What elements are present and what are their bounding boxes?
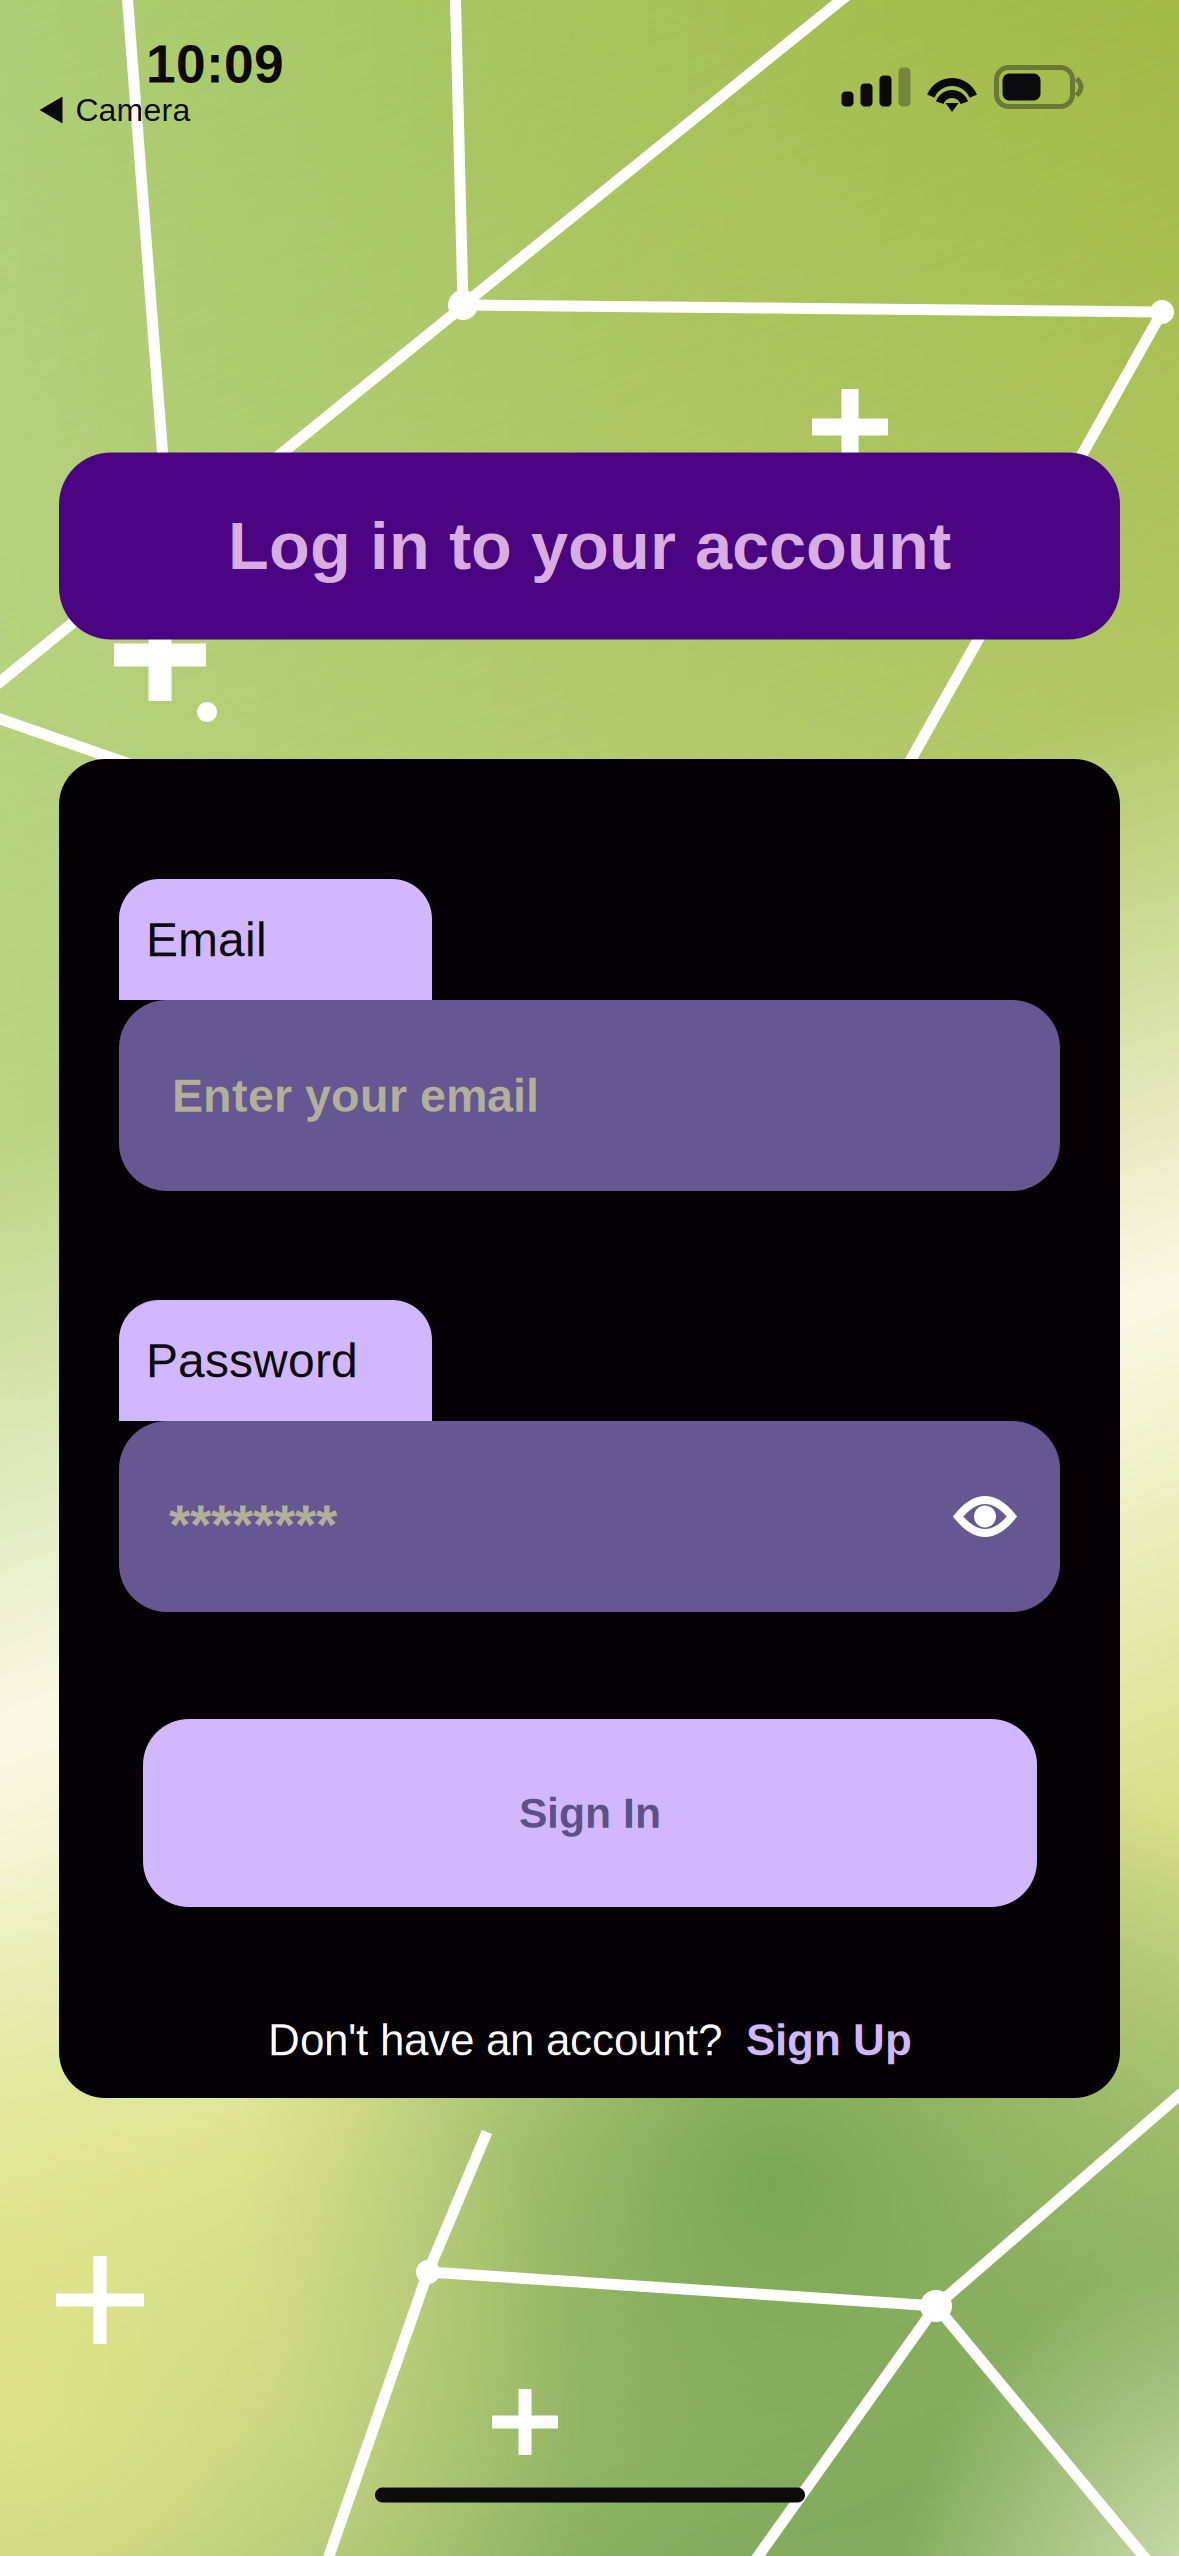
staticText: Log in to your account xyxy=(228,509,951,583)
staticText: Password xyxy=(146,1334,358,1387)
staticText: Don't have an account? xyxy=(268,2015,722,2065)
staticText: Sign In xyxy=(519,1789,661,1837)
staticText: 10:09 xyxy=(146,34,284,94)
staticText: Email xyxy=(146,913,267,966)
button[interactable]: Camera xyxy=(25,82,204,138)
button[interactable]: Sign Up xyxy=(722,2015,912,2065)
staticText: Camera xyxy=(75,92,190,128)
button[interactable]: Show password xyxy=(956,1464,1060,1568)
staticText: Enter your email xyxy=(172,1069,539,1121)
staticText: ******** xyxy=(169,1494,337,1555)
staticText: Sign Up xyxy=(746,2015,912,2065)
button[interactable]: Sign In xyxy=(143,1719,1037,1907)
